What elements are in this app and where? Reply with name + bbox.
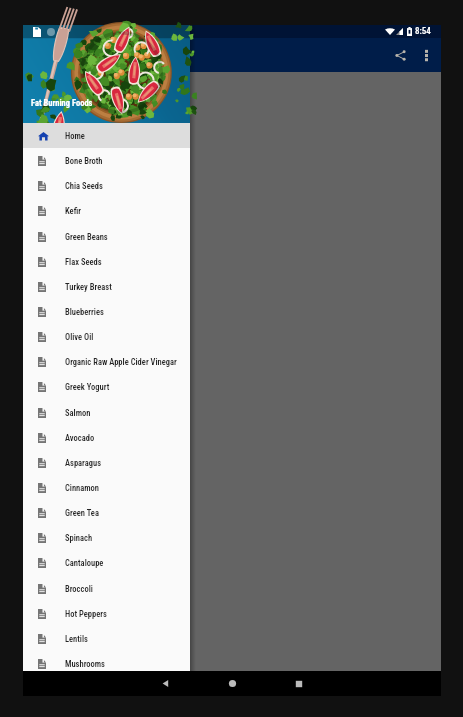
button[interactable]: Olive Oil [23,324,190,350]
button[interactable]: Chia Seeds [23,173,190,199]
button[interactable]: Hot Peppers [23,601,190,627]
staticText: Chia Seeds [65,181,103,191]
staticText: Green Tea [65,508,99,518]
button[interactable]: Home [23,123,190,148]
staticText: 8:54 [415,26,431,37]
staticText: Blueberries [65,307,104,317]
button[interactable]: Cantaloupe [23,550,190,576]
staticText: Bone Broth [65,156,103,166]
button[interactable]: Turkey Breast [23,274,190,300]
staticText: Fat Burning Foods [31,98,93,108]
button[interactable]: Bone Broth [23,148,190,174]
staticText: Flax Seeds [65,257,102,267]
button[interactable]: Blueberries [23,299,190,325]
button[interactable]: Recents [286,671,312,696]
staticText: Organic Raw Apple Cider Vinegar [65,357,177,367]
button[interactable]: Back [152,671,178,696]
staticText: Lentils [65,634,88,644]
staticText: Turkey Breast [65,282,112,292]
button[interactable]: Avocado [23,425,190,451]
staticText: Green Beans [65,232,108,242]
staticText: Salmon [65,408,91,418]
staticText: Kefir [65,206,81,216]
button[interactable]: Green Tea [23,500,190,526]
button[interactable]: More options [416,38,436,72]
button[interactable]: Cinnamon [23,475,190,501]
button[interactable]: Organic Raw Apple Cider Vinegar [23,349,190,375]
button[interactable]: Mushrooms [23,651,190,677]
button[interactable]: Broccoli [23,576,190,602]
button[interactable]: Spinach [23,525,190,551]
staticText: Greek Yogurt [65,382,110,392]
staticText: Cinnamon [65,483,100,493]
staticText: Mushrooms [65,659,105,669]
staticText: Cantaloupe [65,558,104,568]
staticText: Asparagus [65,458,102,468]
button[interactable]: Asparagus [23,450,190,476]
button[interactable]: Flax Seeds [23,249,190,275]
staticText: Home [65,131,85,141]
staticText: Hot Peppers [65,609,107,619]
button[interactable]: Greek Yogurt [23,374,190,400]
button[interactable]: Lentils [23,626,190,652]
button[interactable]: Home [219,671,245,696]
staticText: Spinach [65,533,93,543]
button[interactable]: Salmon [23,400,190,426]
staticText: Avocado [65,433,95,443]
button[interactable]: Kefir [23,198,190,224]
button[interactable]: Green Beans [23,224,190,250]
button[interactable]: Share [389,38,411,72]
staticText: Broccoli [65,584,93,594]
staticText: Olive Oil [65,332,94,342]
